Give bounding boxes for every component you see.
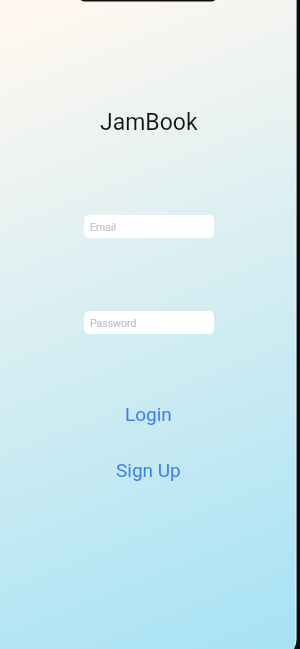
staticText: JamBook: [100, 109, 198, 136]
staticText: Password: [90, 317, 137, 329]
button[interactable]: Password: [84, 311, 214, 334]
button[interactable]: Sign Up: [116, 459, 181, 481]
staticText: Email: [90, 221, 116, 233]
button[interactable]: Login: [125, 403, 172, 425]
button[interactable]: Email: [84, 215, 214, 238]
